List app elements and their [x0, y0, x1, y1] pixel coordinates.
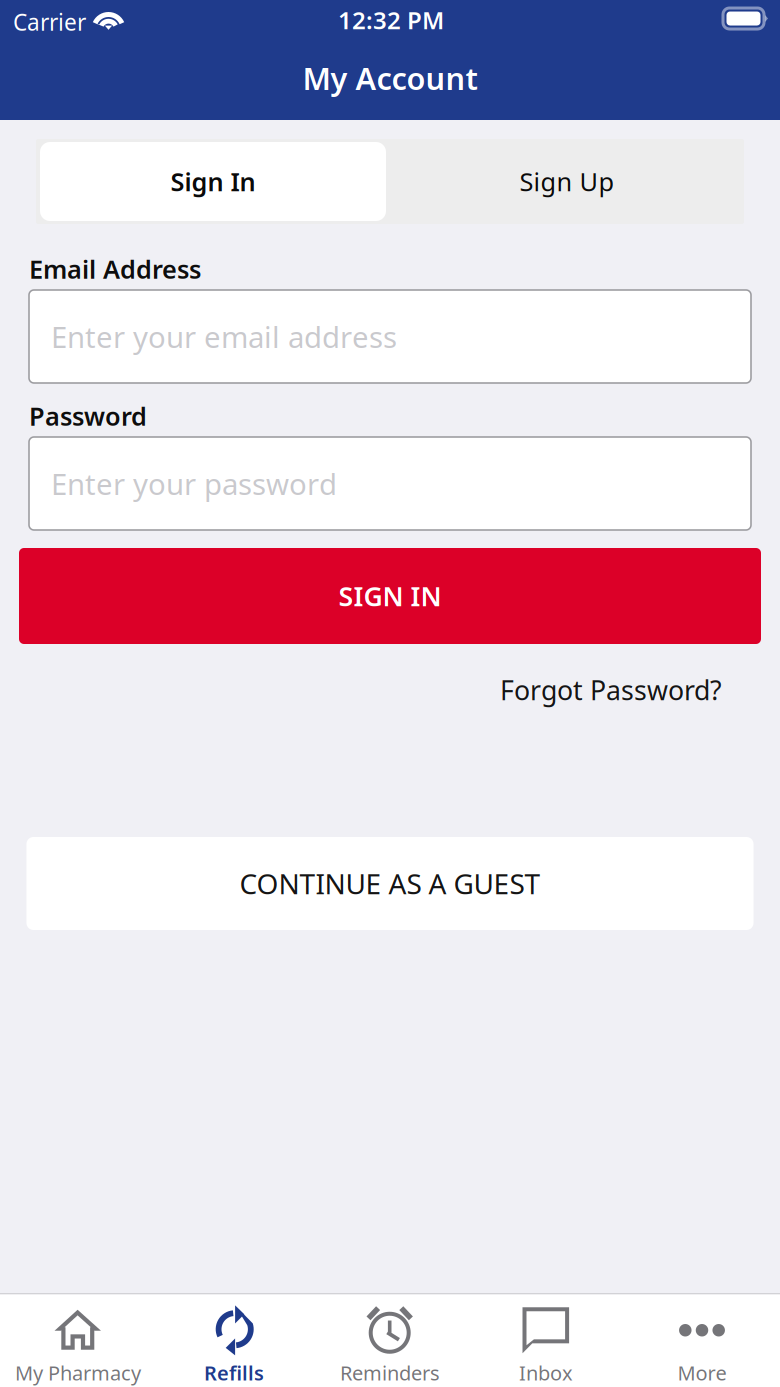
button[interactable]: Reminders [312, 1294, 468, 1387]
staticText: Reminders [340, 1359, 440, 1386]
staticText: Forgot Password? [500, 672, 722, 708]
button[interactable]: CONTINUE AS A GUEST [26, 837, 753, 930]
staticText: Carrier [13, 7, 86, 37]
button[interactable]: Refills [156, 1294, 312, 1387]
button[interactable]: Sign Up [390, 139, 744, 224]
staticText: More [677, 1359, 726, 1386]
button[interactable]: SIGN IN [19, 548, 761, 644]
staticText: Enter your password [51, 464, 337, 503]
staticText: 12:32 PM [338, 4, 444, 36]
button[interactable]: My Pharmacy [0, 1294, 156, 1387]
staticText: CONTINUE AS A GUEST [239, 865, 540, 902]
button[interactable]: Inbox [468, 1294, 624, 1387]
staticText: My Pharmacy [15, 1359, 141, 1386]
staticText: Sign In [170, 165, 255, 198]
staticText: SIGN IN [338, 578, 441, 614]
button[interactable]: More [624, 1294, 780, 1387]
staticText: Email Address [29, 252, 201, 286]
button[interactable]: Sign In [40, 142, 386, 221]
staticText: Inbox [519, 1359, 573, 1386]
staticText: Password [29, 399, 147, 433]
staticText: Enter your email address [51, 317, 397, 356]
staticText: Refills [204, 1359, 264, 1386]
staticText: Sign Up [519, 165, 614, 198]
staticText: My Account [302, 58, 477, 98]
button[interactable]: Forgot Password? [500, 674, 722, 706]
